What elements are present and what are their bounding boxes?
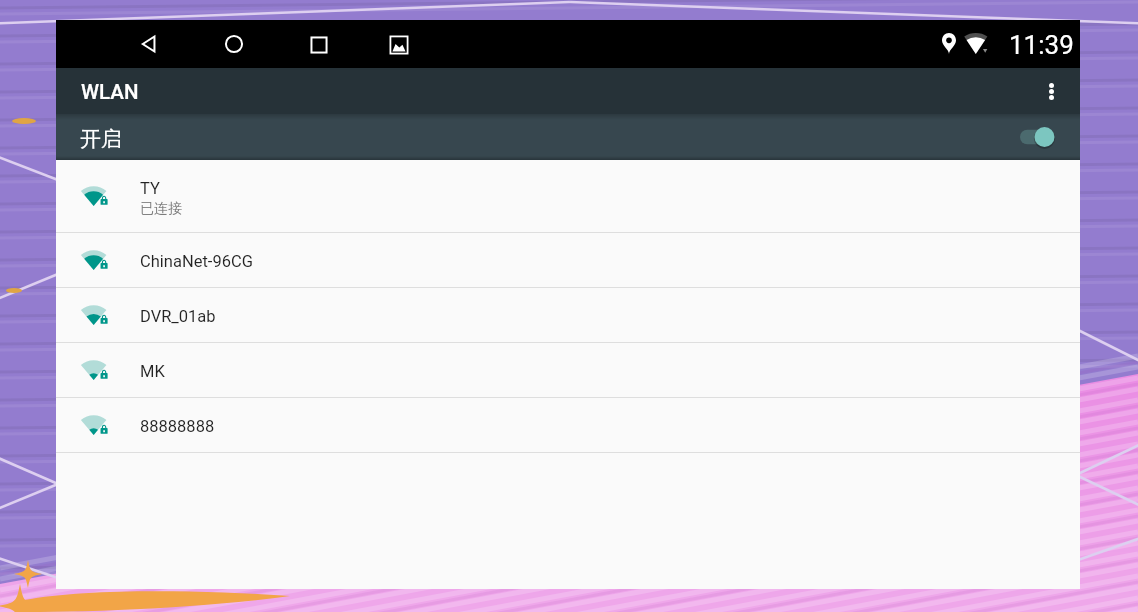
button[interactable]: ChinaNet-96CG — [56, 233, 1080, 287]
staticText: 开启 — [80, 126, 122, 152]
staticText: DVR_01ab — [140, 307, 216, 326]
button[interactable]: 88888888 — [56, 398, 1080, 452]
button[interactable]: Screenshot — [386, 31, 412, 57]
button[interactable]: TY — [56, 160, 1080, 232]
button[interactable]: Back — [136, 31, 162, 57]
staticText: ChinaNet-96CG — [140, 252, 253, 271]
staticText: MK — [140, 362, 165, 381]
button[interactable]: Home — [221, 31, 247, 57]
button[interactable]: DVR_01ab — [56, 288, 1080, 342]
staticText: 已连接 — [140, 200, 182, 218]
button[interactable]: MK — [56, 343, 1080, 397]
button[interactable]: WLAN on — [1017, 122, 1063, 152]
staticText: TY — [140, 179, 160, 198]
button[interactable]: More options — [1022, 68, 1080, 114]
staticText: WLAN — [81, 80, 139, 104]
button[interactable]: 开启 — [56, 114, 1080, 160]
staticText: 88888888 — [140, 417, 215, 436]
staticText: 11:39 — [1009, 30, 1074, 60]
button[interactable]: Recents — [306, 31, 332, 57]
